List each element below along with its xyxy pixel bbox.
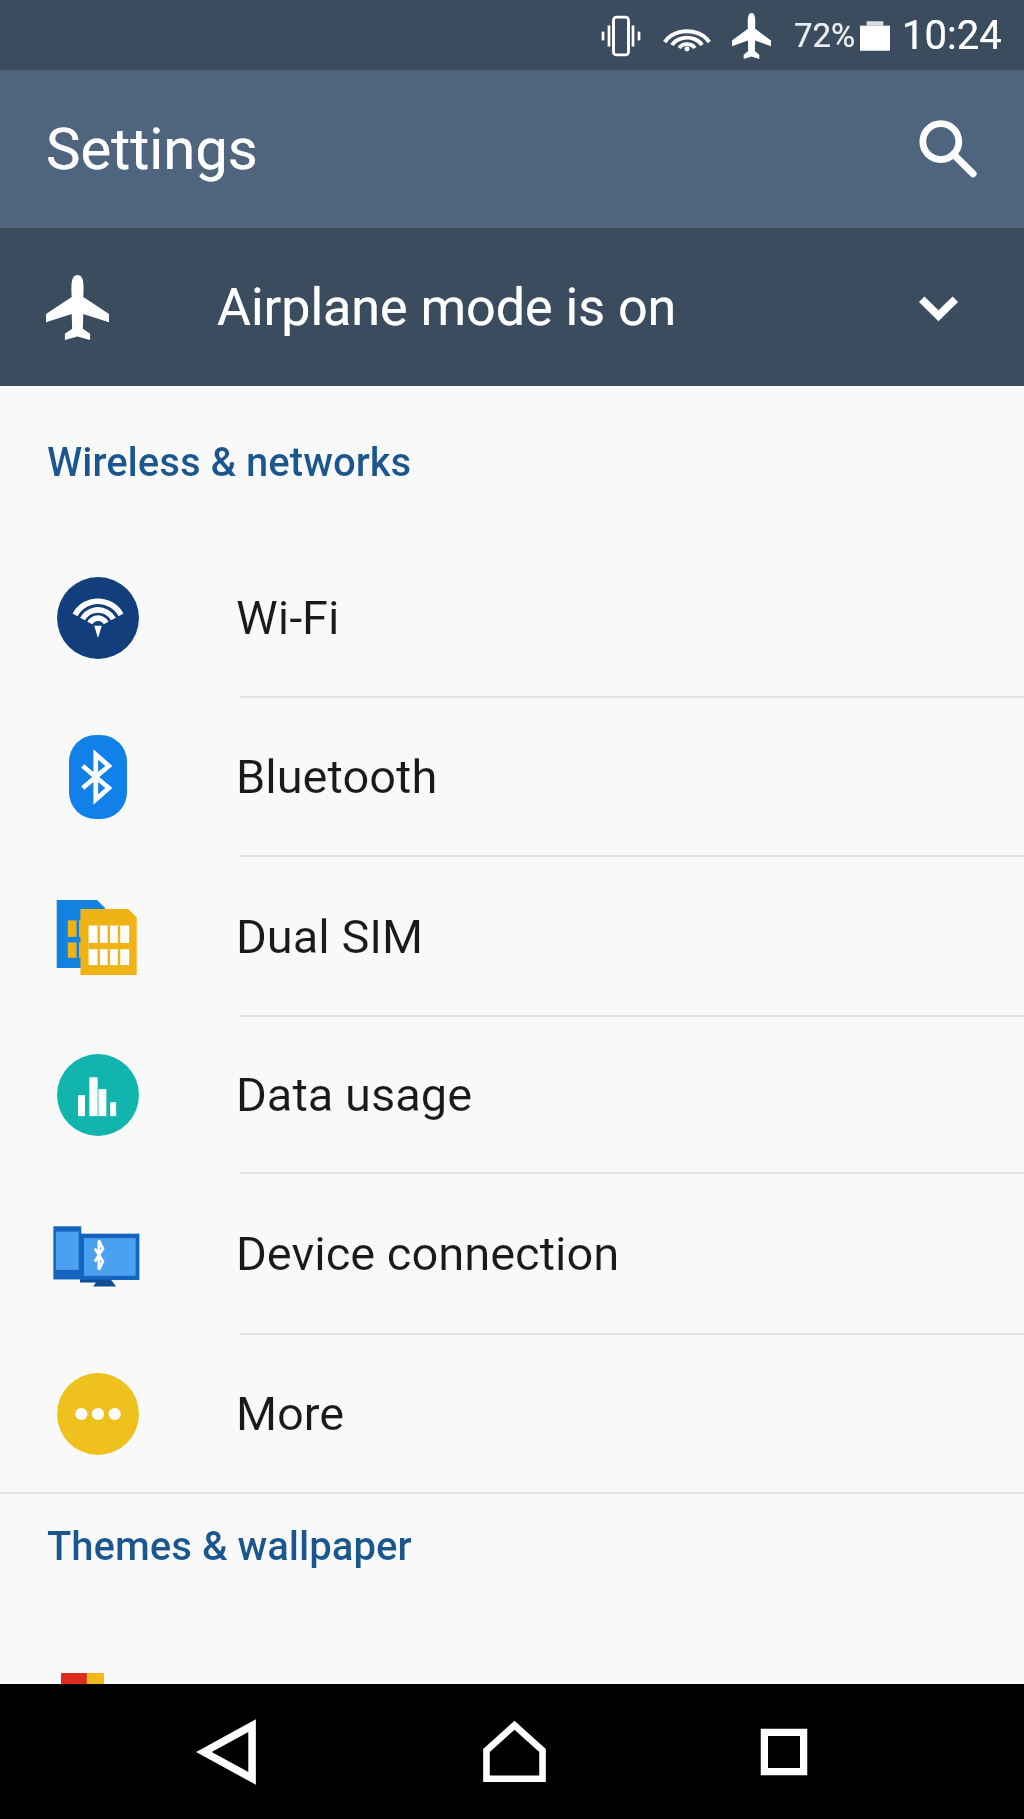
button[interactable]: Home bbox=[459, 1697, 569, 1807]
staticText: Wi-Fi bbox=[236, 590, 340, 645]
staticText: Data usage bbox=[236, 1067, 473, 1122]
button[interactable]: Wi-Fi bbox=[0, 539, 1024, 696]
staticText: Device connection bbox=[236, 1226, 620, 1281]
button[interactable]: Data usage bbox=[0, 1017, 1024, 1172]
staticText: Wireless & networks bbox=[47, 439, 412, 486]
button[interactable] bbox=[0, 1598, 1024, 1684]
staticText: More bbox=[236, 1386, 345, 1441]
button[interactable]: Device connection bbox=[0, 1174, 1024, 1333]
button[interactable]: Recent apps bbox=[729, 1697, 839, 1807]
staticText: Airplane mode is on bbox=[217, 277, 677, 338]
staticText: 10:24 bbox=[902, 12, 1002, 59]
staticText: Themes & wallpaper bbox=[47, 1523, 412, 1570]
other: Expand bbox=[902, 271, 974, 343]
staticText: Settings bbox=[46, 115, 258, 183]
button[interactable]: Bluetooth bbox=[0, 698, 1024, 855]
button[interactable]: More bbox=[0, 1335, 1024, 1492]
button[interactable]: Search bbox=[902, 104, 992, 194]
staticText: Dual SIM bbox=[236, 909, 424, 964]
button[interactable]: Back bbox=[173, 1697, 283, 1807]
button[interactable]: Airplane mode is on bbox=[0, 228, 1024, 386]
button[interactable]: Dual SIM bbox=[0, 857, 1024, 1015]
staticText: Bluetooth bbox=[236, 749, 438, 804]
staticText: 72% bbox=[794, 16, 856, 55]
